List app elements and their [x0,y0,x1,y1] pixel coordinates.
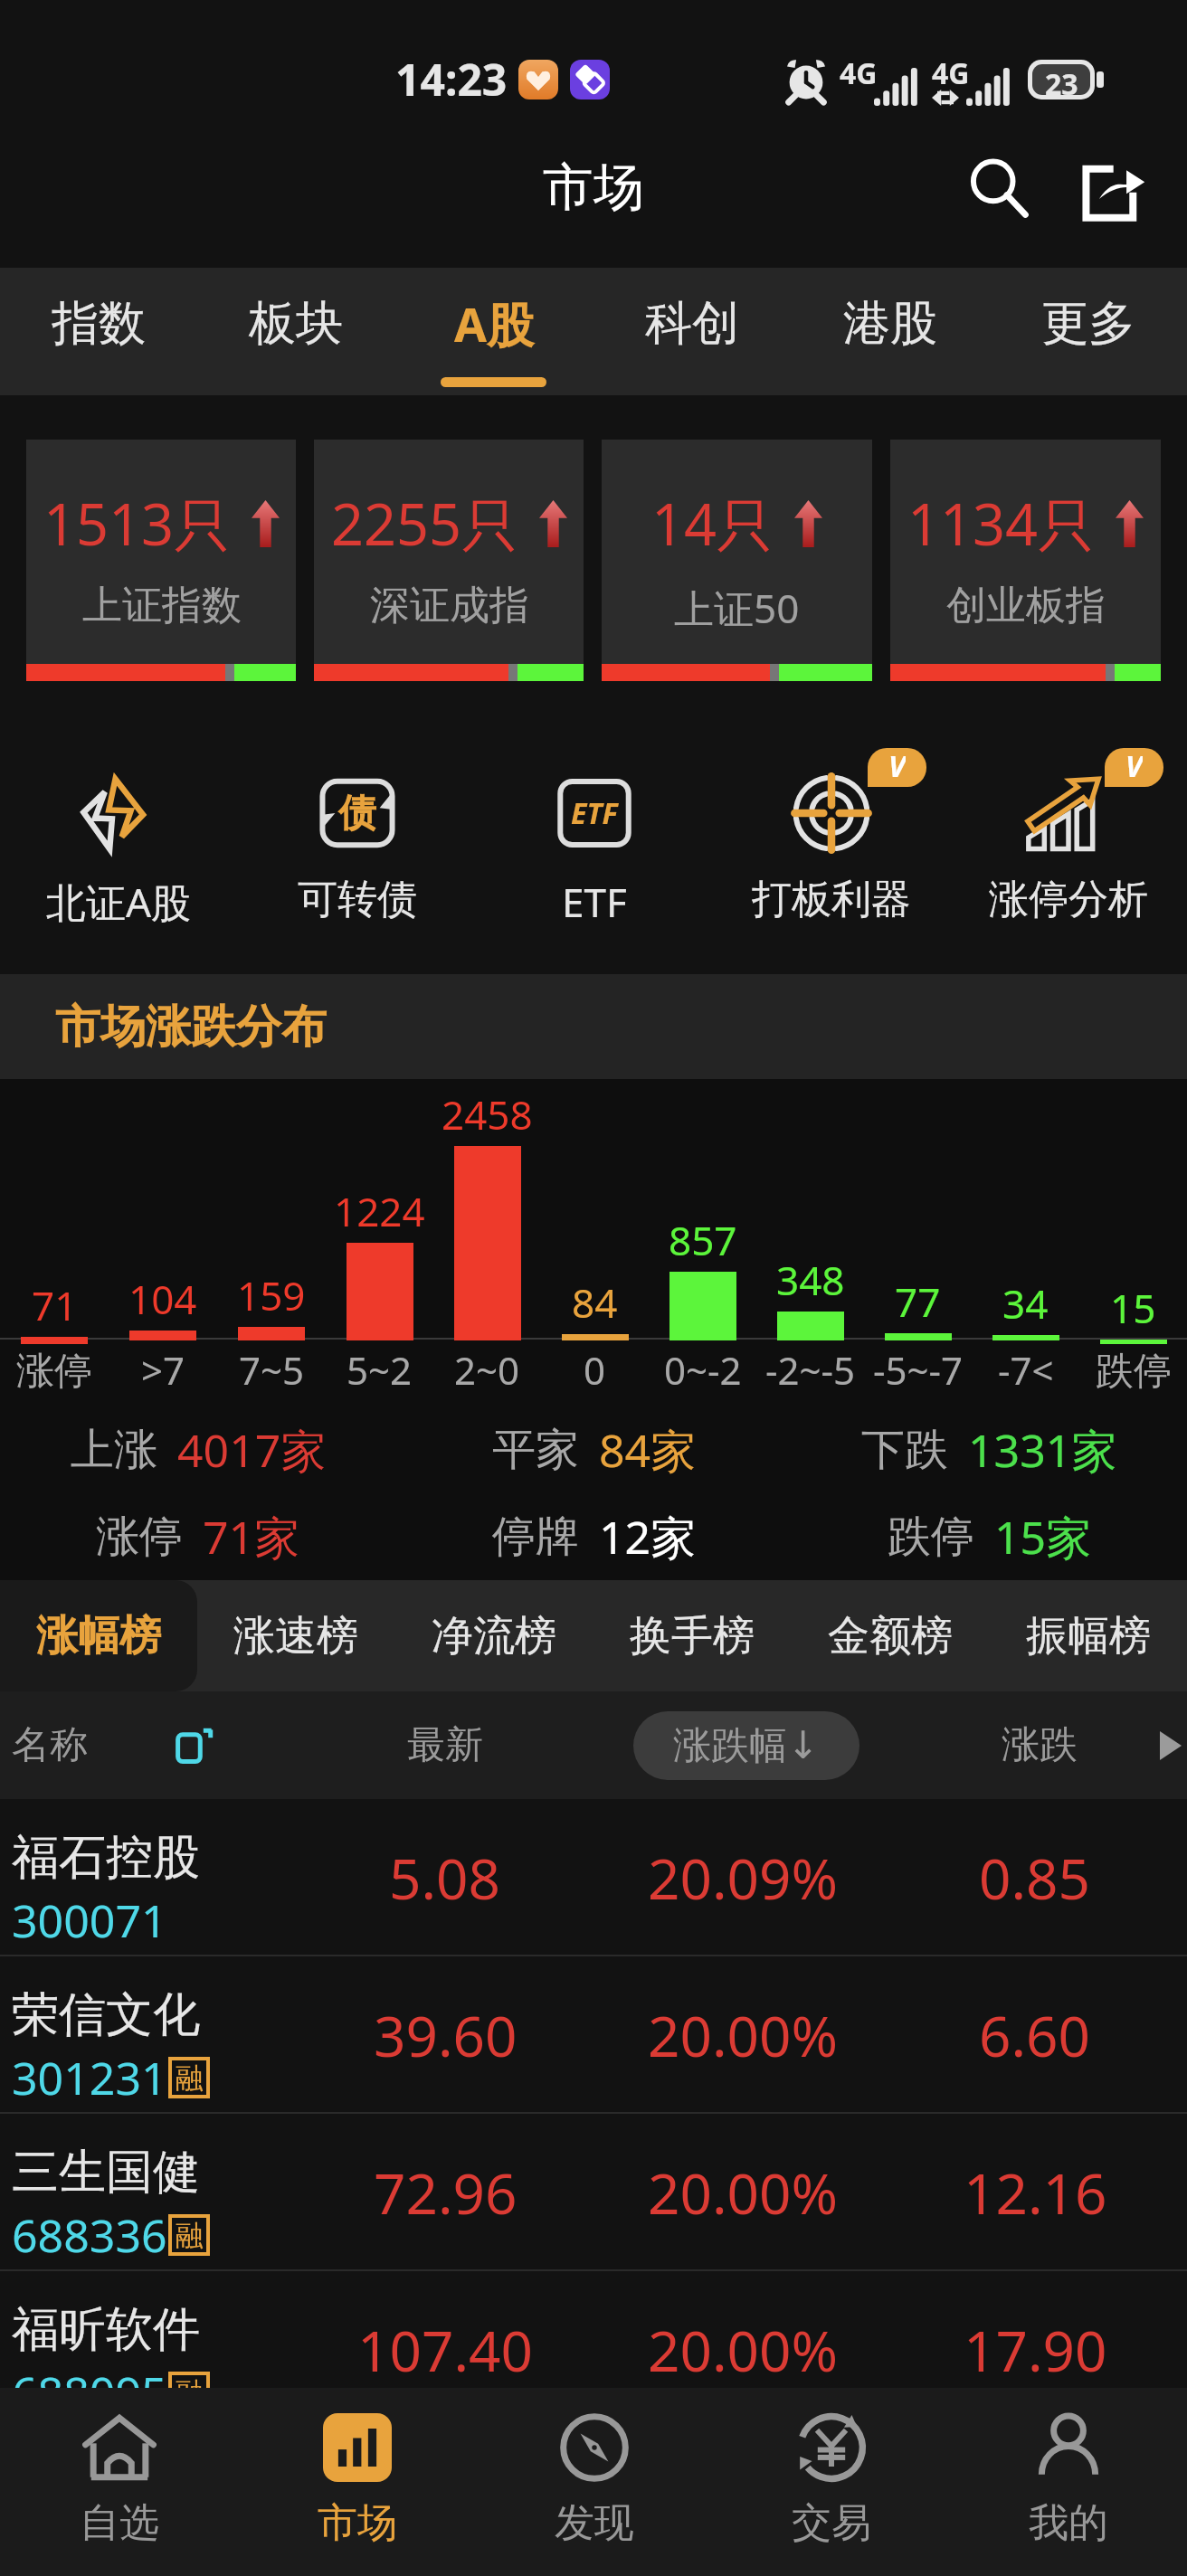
staticText: 2458 [442,1087,533,1141]
staticText: 科创 [645,294,739,354]
button[interactable]: 我的 [950,2388,1187,2576]
button[interactable]: 港股 [791,268,989,395]
staticText: 涨停 [16,1348,92,1396]
button[interactable]: 福石控股 [0,1799,1187,1956]
staticText: 7~5 [239,1344,305,1396]
staticText: >7 [141,1344,185,1396]
button[interactable]: 14只 [602,440,872,681]
staticText: 北证A股 [46,875,192,929]
staticText: 0~-2 [664,1344,742,1396]
staticText: 12.16 [964,2155,1107,2230]
staticText: 6.60 [979,1997,1091,2073]
button[interactable]: V [713,715,950,974]
button[interactable]: 交易 [713,2388,950,2576]
staticText: 1224 [334,1184,425,1238]
staticText: 自选 [80,2498,159,2548]
staticText: 348 [776,1253,845,1307]
staticText: 77 [895,1274,941,1329]
staticText: 涨幅榜 [36,1610,161,1662]
staticText: 4G [932,53,970,93]
staticText: 688095 [12,2362,167,2423]
button[interactable]: 涨速榜 [197,1580,394,1691]
staticText: 71 [32,1278,78,1332]
staticText: 107.40 [357,2312,533,2388]
button[interactable]: 发现 [476,2388,713,2576]
button[interactable]: 市场 [238,2388,476,2576]
staticText: 5~2 [347,1344,413,1396]
staticText: 下跌 [861,1423,948,1477]
staticText: 2~0 [454,1344,520,1396]
button[interactable]: 1513只 [26,440,296,681]
staticText: 交易 [792,2498,871,2548]
staticText: 涨跌 [1002,1721,1078,1769]
staticText: 福石控股 [12,1828,200,1888]
button[interactable]: 指数 [0,268,197,395]
button[interactable]: 债 [238,715,476,974]
button[interactable]: 板块 [197,268,394,395]
button[interactable]: 三生国健 [0,2114,1187,2271]
staticText: 1331家 [968,1419,1117,1481]
staticText: 板块 [249,294,343,354]
button[interactable]: 2255只 [314,440,584,681]
staticText: 72.96 [374,2155,518,2230]
button[interactable]: Share [1068,137,1167,237]
button[interactable]: V [950,715,1187,974]
staticText: 4017家 [177,1419,327,1481]
staticText: V [1125,748,1143,785]
button[interactable]: 自选 [0,2388,238,2576]
staticText: 5.08 [389,1840,501,1916]
staticText: 20.00% [648,2155,838,2230]
staticText: 14只 [651,485,774,563]
staticText: 创业板指 [946,581,1106,630]
button[interactable]: 科创 [593,268,791,395]
staticText: 荣信文化 [12,1985,200,2045]
staticText: 2255只 [331,485,519,563]
staticText: 更多 [1041,294,1135,354]
button[interactable]: 净流榜 [394,1580,593,1691]
button[interactable]: 北证A股 [0,715,238,974]
staticText: ETF [571,793,618,833]
button[interactable]: 福昕软件 [0,2271,1187,2429]
button[interactable]: A股 [394,268,593,395]
staticText: 融 [176,2375,204,2410]
staticText: 300071 [12,1889,167,1951]
button[interactable]: Search [948,137,1048,237]
button[interactable]: ETF [476,715,713,974]
button[interactable]: 振幅榜 [989,1580,1187,1691]
staticText: 我的 [1029,2498,1108,2548]
button[interactable]: 荣信文化 [0,1956,1187,2114]
button[interactable]: 换手榜 [593,1580,791,1691]
staticText: -5~-7 [873,1344,964,1396]
staticText: 39.60 [374,1997,518,2073]
staticText: 71家 [203,1506,300,1567]
staticText: 市场涨跌分布 [55,999,327,1056]
staticText: 打板利器 [752,875,911,924]
button[interactable]: 涨幅榜 [0,1580,197,1691]
staticText: ETF [562,875,627,929]
button[interactable]: 涨跌幅↓ [633,1711,859,1780]
staticText: 深证成指 [370,581,529,630]
staticText: 金额榜 [828,1610,953,1662]
staticText: 104 [128,1272,197,1326]
staticText: 市场 [318,2498,397,2548]
staticText: 涨停分析 [989,875,1148,924]
staticText: 23 [1045,64,1078,95]
staticText: -7< [998,1344,1054,1396]
staticText: 688336 [12,2204,167,2266]
staticText: 20.09% [648,1840,838,1916]
staticText: A股 [454,291,534,355]
staticText: 20.00% [648,1997,838,2073]
button[interactable]: 1134只 [890,440,1161,681]
staticText: 15家 [994,1506,1092,1567]
staticText: 可转债 [298,875,417,924]
staticText: 84家 [599,1419,697,1481]
staticText: 0.85 [979,1840,1091,1916]
staticText: 平家 [492,1423,579,1477]
staticText: 融 [176,2218,204,2253]
button[interactable]: 金额榜 [791,1580,989,1691]
staticText: 涨速榜 [233,1610,358,1662]
staticText: 159 [237,1268,306,1322]
button[interactable]: 更多 [989,268,1187,395]
staticText: 4G [840,53,878,93]
staticText: 上涨 [71,1423,157,1477]
